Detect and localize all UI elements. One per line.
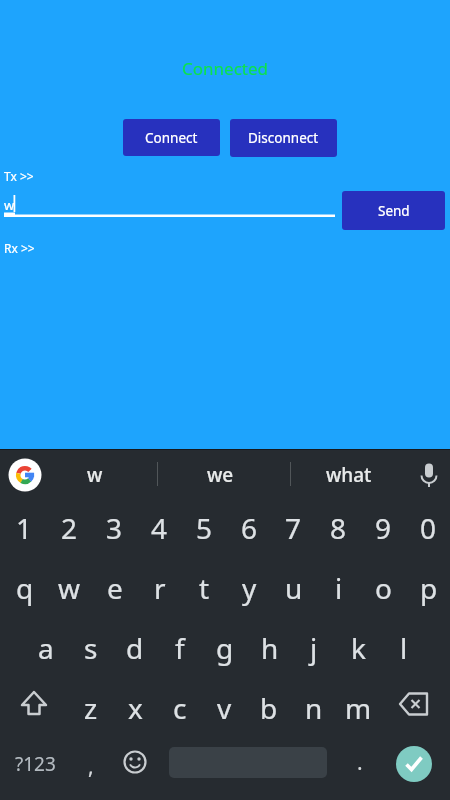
button[interactable] — [8, 458, 42, 492]
button[interactable]: 1 — [2, 498, 47, 558]
button[interactable]: w — [0, 190, 336, 220]
button[interactable]: p — [406, 558, 450, 618]
staticText: g — [216, 629, 234, 667]
staticText: u — [285, 569, 303, 607]
button[interactable]: what — [294, 449, 404, 500]
staticText: Send — [378, 202, 410, 220]
button[interactable]: z — [68, 678, 113, 738]
staticText: Connect — [145, 129, 198, 147]
button[interactable]: t — [182, 558, 227, 618]
staticText: 9 — [375, 509, 392, 547]
button[interactable]: 6 — [227, 498, 272, 558]
button[interactable]: c — [157, 678, 202, 738]
button[interactable] — [391, 680, 439, 740]
staticText: i — [335, 569, 343, 607]
staticText: b — [260, 689, 278, 727]
button[interactable]: 7 — [271, 498, 316, 558]
button[interactable]: n — [291, 678, 336, 738]
staticText: t — [199, 569, 210, 607]
button[interactable]: a — [23, 618, 68, 678]
button[interactable]: , — [68, 736, 113, 796]
staticText: v — [217, 689, 232, 727]
button[interactable]: d — [112, 618, 157, 678]
button[interactable]: we — [165, 449, 275, 500]
button[interactable]: v — [202, 678, 247, 738]
button[interactable]: r — [137, 558, 182, 618]
button[interactable] — [113, 740, 158, 800]
staticText: c — [173, 689, 187, 727]
staticText: 7 — [285, 509, 302, 547]
button[interactable]: j — [291, 618, 336, 678]
staticText: x — [128, 689, 143, 727]
button[interactable]: 9 — [361, 498, 406, 558]
staticText: Tx >> — [4, 168, 34, 184]
staticText: 2 — [61, 509, 78, 547]
button[interactable]: o — [361, 558, 406, 618]
button[interactable]: q — [2, 558, 47, 618]
button[interactable]: u — [271, 558, 316, 618]
button[interactable]: 2 — [47, 498, 92, 558]
button[interactable]: x — [113, 678, 158, 738]
staticText: d — [126, 629, 144, 667]
staticText: l — [400, 629, 408, 667]
button[interactable]: s — [68, 618, 113, 678]
button[interactable]: k — [336, 618, 381, 678]
staticText: j — [310, 629, 318, 667]
button[interactable]: i — [316, 558, 361, 618]
staticText: y — [242, 569, 257, 607]
staticText: 5 — [196, 509, 213, 547]
staticText: f — [175, 629, 185, 667]
button[interactable]: h — [247, 618, 292, 678]
staticText: 4 — [151, 509, 168, 547]
button[interactable] — [11, 680, 57, 740]
button[interactable]: g — [202, 618, 247, 678]
staticText: Connected — [182, 57, 268, 80]
staticText: 6 — [241, 509, 258, 547]
button[interactable]: ?123 — [13, 734, 58, 794]
staticText: 3 — [106, 509, 123, 547]
staticText: , — [88, 752, 94, 781]
staticText: q — [16, 569, 34, 607]
button[interactable]: y — [227, 558, 272, 618]
button[interactable]: b — [246, 678, 291, 738]
staticText: ?123 — [15, 751, 56, 777]
staticText: o — [375, 569, 392, 607]
staticText: what — [326, 462, 372, 488]
staticText: 1 — [16, 509, 33, 547]
button[interactable]: m — [336, 678, 381, 738]
staticText: 8 — [330, 509, 347, 547]
button[interactable]: w — [40, 449, 150, 500]
button[interactable]: 5 — [182, 498, 227, 558]
button[interactable]: 8 — [316, 498, 361, 558]
button[interactable]: Connect — [123, 119, 220, 156]
staticText: . — [357, 748, 363, 777]
button[interactable]: f — [157, 618, 202, 678]
button[interactable]: 4 — [137, 498, 182, 558]
button[interactable]: e — [92, 558, 137, 618]
staticText: p — [420, 569, 438, 607]
button[interactable]: 3 — [92, 498, 137, 558]
button[interactable]: Send — [342, 191, 445, 230]
staticText: w — [87, 462, 103, 488]
staticText: k — [351, 629, 366, 667]
staticText: w — [58, 569, 81, 607]
button[interactable]: . — [337, 732, 382, 792]
staticText: h — [261, 629, 279, 667]
button[interactable] — [396, 746, 432, 782]
button[interactable] — [409, 454, 449, 496]
staticText: z — [84, 689, 98, 727]
button[interactable]: w — [47, 558, 92, 618]
button[interactable]: l — [381, 618, 426, 678]
staticText: w — [4, 196, 15, 214]
staticText: e — [107, 569, 123, 607]
staticText: 0 — [420, 509, 437, 547]
staticText: Rx >> — [4, 240, 35, 256]
button[interactable]: 0 — [406, 498, 450, 558]
staticText: Disconnect — [248, 129, 319, 147]
staticText: r — [154, 569, 166, 607]
button[interactable]: Disconnect — [230, 119, 337, 157]
staticText: s — [84, 629, 98, 667]
staticText: we — [207, 462, 234, 488]
staticText: a — [38, 629, 54, 667]
